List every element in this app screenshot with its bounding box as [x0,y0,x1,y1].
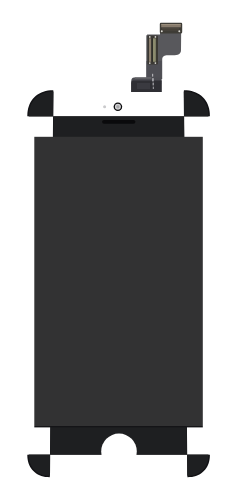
button[interactable]: Phone LCD screen digitizer assembly [0,0,238,500]
